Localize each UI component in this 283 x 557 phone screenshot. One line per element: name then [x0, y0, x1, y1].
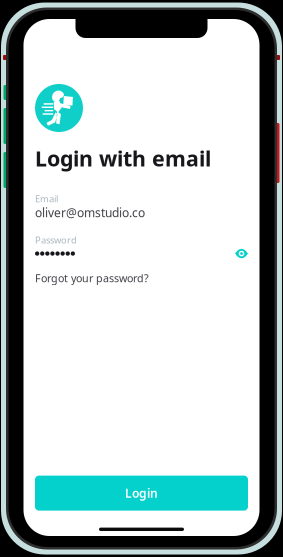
staticText: Login: [125, 485, 158, 501]
staticText: Forgot your password?: [35, 271, 149, 285]
staticText: oliver@omstudio.co: [35, 205, 145, 221]
staticText: Login with email: [35, 144, 211, 172]
button[interactable]: Forgot your password?: [35, 271, 149, 285]
button[interactable]: Login: [35, 476, 248, 511]
staticText: Password: [35, 234, 77, 246]
staticText: Email: [35, 192, 58, 205]
button[interactable]: Show password: [235, 248, 248, 259]
